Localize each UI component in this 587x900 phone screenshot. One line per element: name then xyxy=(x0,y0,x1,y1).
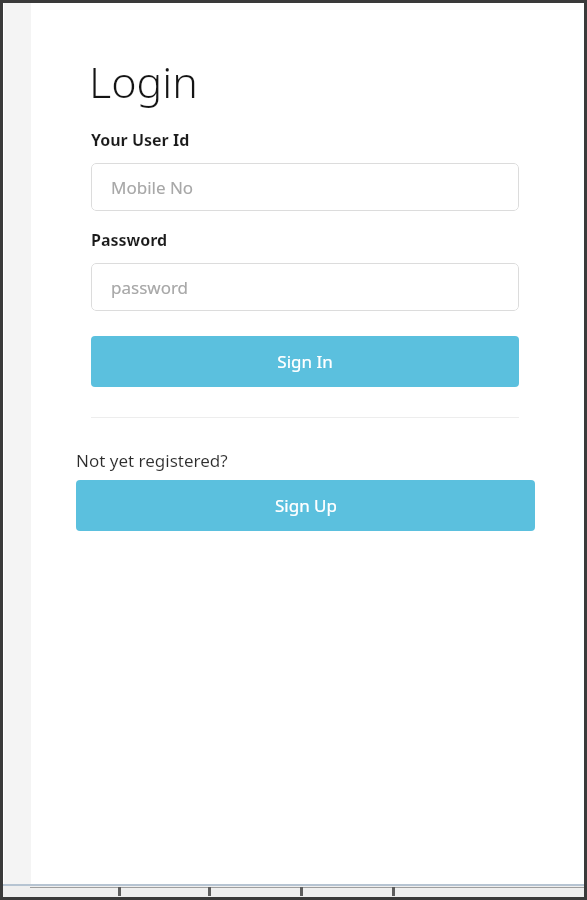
button[interactable]: Sign In xyxy=(91,336,519,387)
button[interactable]: Sign Up xyxy=(76,480,535,531)
button[interactable]: Password input xyxy=(91,263,519,311)
staticText: Password xyxy=(91,229,168,251)
button[interactable]: Your User Id input xyxy=(91,163,519,211)
staticText: password xyxy=(111,276,189,299)
staticText: Sign In xyxy=(277,350,333,373)
staticText: Not yet registered? xyxy=(76,449,228,472)
staticText: Sign Up xyxy=(275,494,337,517)
staticText: Your User Id xyxy=(91,129,190,151)
staticText: Login xyxy=(89,52,198,111)
staticText: Mobile No xyxy=(111,176,194,199)
